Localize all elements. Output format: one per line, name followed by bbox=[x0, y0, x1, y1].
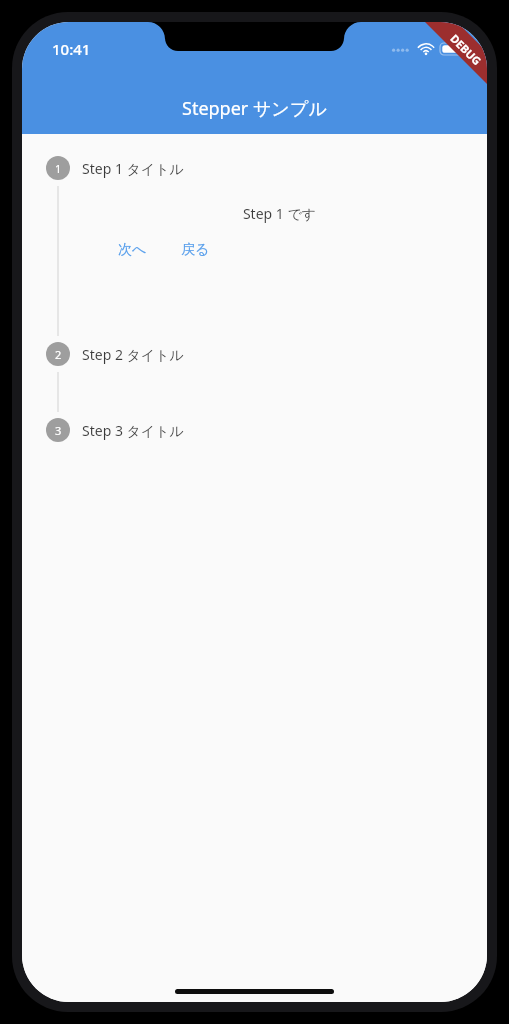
staticText: 戻る bbox=[181, 241, 210, 259]
staticText: 次へ bbox=[118, 241, 147, 259]
staticText: 3 bbox=[55, 423, 62, 438]
staticText: Step 2 タイトル bbox=[82, 345, 184, 364]
staticText: Stepper サンプル bbox=[182, 96, 327, 121]
staticText: DEBUG bbox=[447, 31, 485, 68]
staticText: 1 bbox=[55, 161, 62, 176]
staticText: 2 bbox=[55, 347, 62, 362]
staticText: Step 3 タイトル bbox=[82, 421, 184, 440]
button[interactable]: 2 bbox=[46, 336, 463, 372]
button[interactable]: 次へ bbox=[106, 235, 159, 265]
button[interactable]: 戻る bbox=[169, 235, 222, 265]
staticText: 10:41 bbox=[52, 39, 91, 59]
button[interactable]: 1 bbox=[46, 150, 463, 186]
staticText: Step 1 です bbox=[106, 204, 453, 223]
button[interactable]: 3 bbox=[46, 412, 463, 448]
staticText: Step 1 タイトル bbox=[82, 159, 184, 178]
